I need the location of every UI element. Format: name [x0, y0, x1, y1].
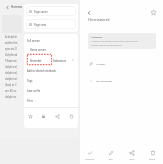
staticText: Create shortcut for collaborators — [27, 59, 71, 62]
button[interactable]: Share — [121, 147, 142, 164]
button[interactable]: Share — [50, 108, 64, 125]
staticText: dolphins. — [5, 95, 17, 99]
button[interactable]: Delete — [64, 108, 78, 125]
staticText: are 40 ex — [5, 89, 17, 93]
button[interactable]: Back — [5, 5, 10, 10]
staticText: dolphins), — [5, 71, 18, 75]
button[interactable]: Favourite — [150, 9, 157, 16]
staticText: Page view — [34, 23, 46, 26]
staticText: species D — [5, 47, 17, 51]
button[interactable]: Complete — [80, 147, 100, 164]
staticText: Create shortcut — [27, 49, 75, 52]
staticText: Print — [27, 99, 75, 102]
staticText: Edit — [109, 158, 113, 161]
button[interactable]: Delete — [142, 147, 163, 164]
staticText: Platanisti — [5, 59, 17, 63]
button[interactable]: Print — [24, 95, 78, 105]
button[interactable]: Homework — [88, 33, 156, 49]
button[interactable]: Favourite — [24, 108, 37, 125]
button[interactable]: My reminders — [80, 75, 163, 86]
staticText: Delete — [149, 158, 156, 161]
staticText: Homework — [88, 17, 110, 23]
staticText: Page sorter — [34, 10, 48, 13]
staticText: Add to shared notebook — [27, 69, 75, 72]
button[interactable]: Page view — [26, 19, 76, 29]
staticText: Home screen — [30, 48, 46, 51]
staticText: Save as file — [27, 89, 75, 92]
staticText: dolphins), — [5, 65, 18, 69]
button[interactable]: Lock — [37, 108, 50, 125]
button[interactable]: Edit — [100, 147, 121, 164]
staticText: Tags — [27, 79, 75, 82]
staticText: My reminders — [96, 79, 113, 82]
button[interactable]: Save as file — [24, 85, 78, 95]
button[interactable]: Reminder — [27, 55, 53, 65]
staticText: Homework — [11, 5, 23, 9]
staticText: dolphins). — [5, 77, 18, 81]
staticText: (baiji or C — [5, 83, 17, 87]
button[interactable]: Tags — [24, 75, 78, 85]
button[interactable]: Home screen — [27, 44, 53, 55]
staticText: No alert — [96, 62, 106, 65]
staticText: Reminder — [30, 59, 42, 62]
button[interactable]: Back — [86, 10, 92, 16]
button[interactable]: Page sorter — [26, 6, 76, 16]
staticText: A dolphin — [5, 35, 18, 39]
staticText: Full screen — [27, 39, 75, 42]
button[interactable]: Create shortcut for collaborators — [24, 55, 78, 65]
staticText: Share — [129, 158, 135, 161]
button[interactable]: Full screen — [24, 35, 78, 45]
staticText: A dolphin is an aquatic mammal within th… — [91, 40, 143, 46]
staticText: Homework — [91, 36, 103, 39]
button[interactable]: No alert — [80, 58, 163, 69]
staticText: Delphinid — [5, 53, 18, 57]
button[interactable]: Add to shared notebook — [24, 65, 78, 75]
staticText: Complete — [85, 158, 95, 161]
staticText: within the — [5, 41, 18, 45]
button[interactable]: Create shortcut — [24, 45, 78, 55]
